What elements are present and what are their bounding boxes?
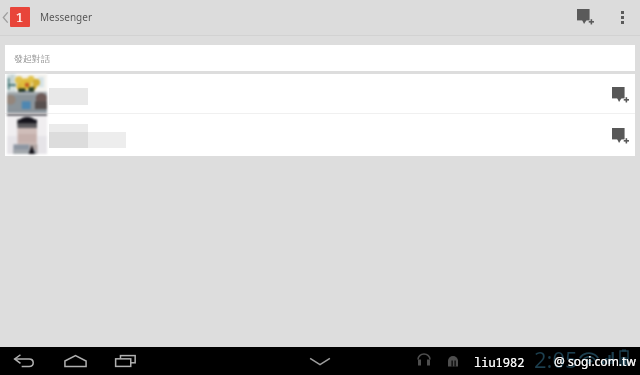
button[interactable]: Messenger app icon [10, 7, 30, 27]
staticText: liu1982 [474, 354, 525, 370]
staticText: 發起對話 [14, 53, 50, 64]
button[interactable]: 發起對話 [5, 45, 635, 71]
staticText: Messenger [40, 10, 93, 24]
button[interactable]: Home [63, 349, 87, 373]
button[interactable]: Hide keyboard [308, 349, 332, 373]
button[interactable]: New chat [5, 74, 635, 113]
staticText: 1 [16, 8, 24, 26]
button[interactable]: New chat [607, 121, 633, 149]
button[interactable]: New chat [607, 80, 633, 108]
button[interactable]: Back [13, 349, 36, 373]
button[interactable]: New message [570, 0, 601, 35]
button[interactable]: New chat [5, 114, 635, 156]
staticText: 2:05 [534, 344, 578, 372]
button[interactable]: Recent apps [113, 349, 137, 373]
button[interactable]: More options [610, 0, 634, 35]
staticText: @ sogi.com.tw [554, 353, 636, 369]
button[interactable]: Back [0, 0, 10, 35]
